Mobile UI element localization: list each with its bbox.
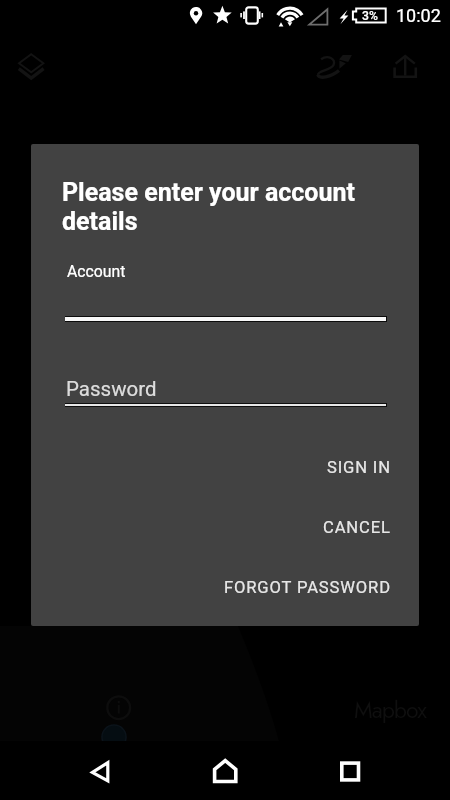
staticText: 3%: [362, 9, 378, 23]
button[interactable]: Home: [201, 741, 249, 800]
staticText: FORGOT PASSWORD: [224, 578, 391, 597]
button[interactable]: CANCEL: [317, 512, 397, 543]
staticText: Mapbox: [354, 693, 426, 726]
button[interactable]: Layers: [8, 43, 54, 89]
button[interactable]: Share: [382, 43, 428, 89]
button[interactable]: Back: [76, 741, 124, 800]
staticText: SIGN IN: [327, 458, 391, 477]
staticText: CANCEL: [323, 518, 391, 537]
staticText: Password: [66, 377, 157, 401]
button[interactable]: Draw: [312, 43, 358, 89]
button[interactable]: FORGOT PASSWORD: [218, 572, 397, 603]
button[interactable]: SIGN IN: [321, 452, 397, 483]
staticText: 10:02: [396, 5, 441, 26]
staticText: Please enter your account details: [62, 178, 374, 236]
button[interactable]: Recent apps: [326, 741, 374, 800]
staticText: Account: [67, 262, 126, 281]
